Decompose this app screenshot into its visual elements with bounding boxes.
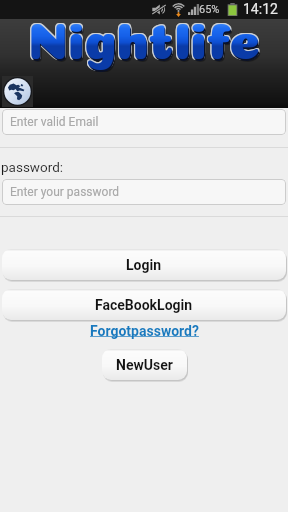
staticText: Nightlife bbox=[29, 19, 262, 45]
staticText: Nightlife bbox=[29, 22, 262, 48]
staticText: Nightlife bbox=[29, 21, 262, 47]
staticText: 14:12 bbox=[243, 1, 278, 17]
button[interactable]: App home bbox=[2, 76, 33, 107]
staticText: Nightlife bbox=[28, 19, 261, 45]
staticText: password: bbox=[1, 159, 64, 175]
staticText: Nightlife bbox=[27, 19, 260, 45]
staticText: Nightlife bbox=[27, 21, 260, 47]
staticText: Nightlife bbox=[27, 20, 260, 46]
button[interactable]: Login bbox=[2, 249, 286, 280]
button[interactable]: FaceBookLogin bbox=[2, 289, 286, 320]
staticText: 65% bbox=[199, 3, 220, 16]
button[interactable]: NewUser bbox=[102, 349, 187, 380]
staticText: Nightlife bbox=[28, 20, 261, 46]
staticText: Nightlife bbox=[28, 21, 261, 47]
button[interactable]: Forgotpassword? bbox=[90, 323, 199, 339]
button[interactable]: Enter your password bbox=[2, 179, 286, 205]
staticText: FaceBookLogin bbox=[95, 297, 193, 313]
staticText: Login bbox=[126, 257, 162, 273]
staticText: Nightlife bbox=[29, 20, 262, 46]
button[interactable]: Enter valid Email bbox=[2, 109, 286, 135]
staticText: NewUser bbox=[116, 357, 173, 373]
staticText: Enter valid Email bbox=[10, 115, 99, 129]
staticText: Enter your password bbox=[10, 185, 120, 199]
staticText: Nightlife bbox=[30, 23, 263, 49]
